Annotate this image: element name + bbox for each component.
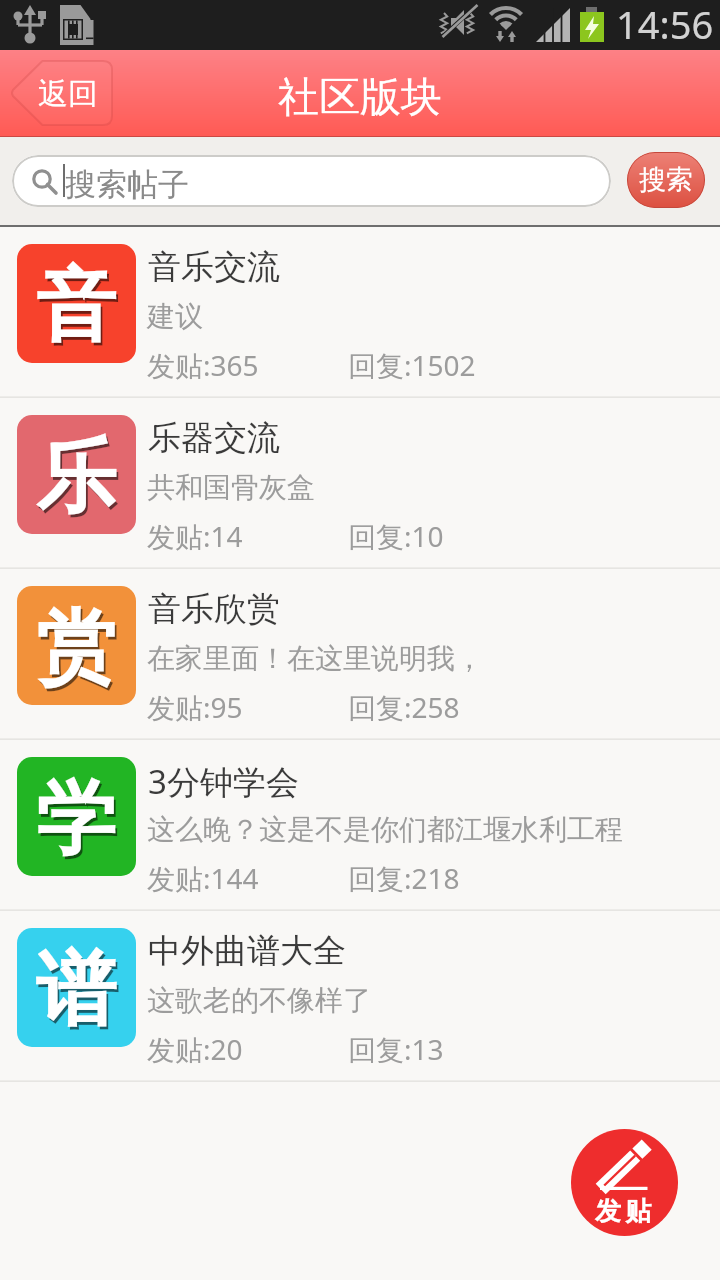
staticText: 发贴:365 (147, 346, 259, 384)
staticText: 搜索帖子 (65, 165, 189, 204)
staticText: 发贴:20 (147, 1030, 243, 1068)
staticText: 赏 (36, 598, 116, 699)
staticText: 发贴:14 (147, 517, 243, 555)
button[interactable]: 音 (0, 227, 720, 398)
staticText: 这么晚？这是不是你们都江堰水利工程 (147, 812, 623, 847)
button[interactable]: 谱 (0, 911, 720, 1082)
staticText: 建议 (147, 299, 203, 334)
staticText: 谱 (38, 943, 118, 1044)
staticText: 回复:13 (348, 1030, 444, 1068)
staticText: 音乐交流 (148, 246, 280, 288)
staticText: 音乐欣赏 (148, 588, 280, 630)
button[interactable]: 返回 (11, 61, 112, 125)
staticText: 发贴:95 (147, 688, 243, 726)
staticText: 14:56 (616, 0, 714, 48)
staticText: 搜索 (639, 163, 693, 197)
button[interactable]: 学 (0, 740, 720, 911)
staticText: 在家里面！在这里说明我， (147, 641, 483, 676)
staticText: 社区版块 (278, 72, 442, 124)
button[interactable]: 赏 (0, 569, 720, 740)
staticText: 学 (36, 769, 116, 870)
staticText: 回复:10 (348, 517, 444, 555)
staticText: 乐 (36, 427, 116, 528)
staticText: 发 (595, 1195, 621, 1228)
staticText: 3分钟学会 (148, 759, 299, 804)
staticText: 赏 (38, 601, 118, 702)
staticText: 音 (36, 256, 116, 357)
staticText: 回复:1502 (348, 346, 476, 384)
staticText: 学 (38, 772, 118, 873)
staticText: 这歌老的不像样了 (147, 983, 371, 1018)
staticText: 中外曲谱大全 (148, 930, 346, 972)
staticText: 共和国骨灰盒 (147, 470, 315, 505)
staticText: 谱 (36, 940, 116, 1041)
staticText: 回复:258 (348, 688, 460, 726)
staticText: 回复:218 (348, 859, 460, 897)
button[interactable]: 发贴 (571, 1129, 678, 1236)
staticText: 返回 (38, 75, 98, 113)
button[interactable]: 搜索帖子 (12, 155, 611, 207)
staticText: 贴 (625, 1195, 651, 1228)
button[interactable]: 乐 (0, 398, 720, 569)
staticText: 发贴:144 (147, 859, 259, 897)
staticText: 乐 (38, 430, 118, 531)
button[interactable]: 搜索 (627, 152, 705, 208)
staticText: 乐器交流 (148, 417, 280, 459)
staticText: 音 (38, 259, 118, 360)
